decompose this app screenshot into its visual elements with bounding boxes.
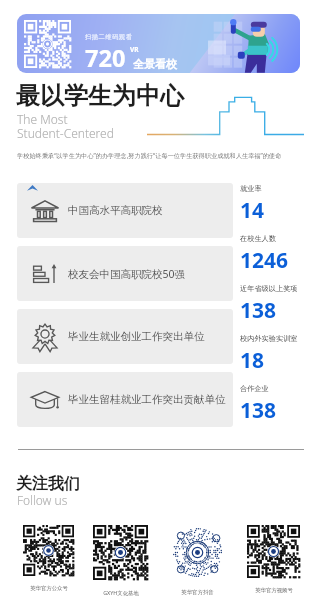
staticText: Follow us — [17, 492, 68, 508]
staticText: VR — [130, 45, 139, 54]
button[interactable]: 毕业生就业创业工作突出单位 — [17, 309, 233, 364]
button[interactable]: 扫描二维码观看720VR全景看校 — [17, 14, 300, 73]
staticText: The Most Student-Centered — [17, 111, 114, 141]
staticText: 中国高水平高职院校 — [68, 204, 163, 217]
staticText: 18 — [240, 346, 265, 375]
button[interactable]: 英华官方公众号 — [13, 525, 84, 592]
staticText: 1246 — [240, 246, 289, 275]
button[interactable]: 英华官方抖音 — [160, 525, 235, 596]
staticText: 就业率 — [240, 184, 262, 193]
staticText: 在校生人数 — [240, 234, 276, 243]
staticText: 最以学生为中心 — [16, 81, 184, 111]
staticText: 138 — [240, 296, 277, 325]
staticText: 毕业生留桂就业工作突出贡献单位 — [68, 393, 226, 406]
staticText: 学校始终秉承“以学生为中心”的办学理念,努力践行“让每一位学生获得职业成就和人生… — [17, 151, 282, 159]
staticText: 720 — [85, 42, 126, 73]
button[interactable]: 英华官方视频号 — [237, 525, 310, 594]
button[interactable]: 毕业生留桂就业工作突出贡献单位 — [17, 372, 233, 427]
staticText: 校友会中国高职院校50强 — [68, 267, 186, 281]
button[interactable]: 中国高水平高职院校 — [17, 183, 233, 238]
staticText: 全景看校 — [133, 57, 177, 71]
staticText: 毕业生就业创业工作突出单位 — [68, 330, 205, 343]
staticText: 英华官方公众号 — [30, 585, 68, 592]
staticText: 校内外实验实训室 — [240, 334, 298, 343]
staticText: 合作企业 — [240, 384, 269, 393]
button[interactable]: 校友会中国高职院校50强 — [17, 246, 233, 301]
staticText: 关注我们 — [16, 474, 80, 494]
staticText: GXYH文化基地 — [103, 589, 139, 596]
staticText: 扫描二维码观看 — [85, 33, 133, 41]
staticText: 英华官方抖音 — [181, 589, 214, 596]
staticText: 14 — [240, 196, 265, 225]
button[interactable]: GXYH文化基地 — [83, 525, 158, 596]
staticText: 近年省级以上奖项 — [240, 284, 298, 293]
staticText: 138 — [240, 396, 277, 425]
staticText: 英华官方视频号 — [255, 587, 293, 594]
